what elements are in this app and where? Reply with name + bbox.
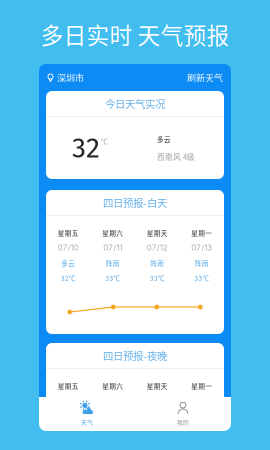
staticText: 天气 — [81, 418, 93, 426]
staticText: 星期天 — [147, 228, 168, 238]
button[interactable]: 我的 — [135, 397, 231, 431]
staticText: 我的 — [177, 418, 189, 426]
staticText: 深圳市 — [57, 71, 84, 84]
staticText: 33℃ — [150, 273, 165, 283]
staticText: 星期五 — [58, 381, 79, 391]
staticText: 星期一 — [191, 381, 212, 391]
button[interactable]: 深圳市 — [47, 67, 84, 88]
staticText: 33℃ — [194, 273, 209, 283]
staticText: 星期六 — [102, 381, 123, 391]
staticText: 07/12 — [147, 243, 168, 252]
staticText: 西南风 4级 — [157, 151, 195, 162]
staticText: 阵雨 — [150, 258, 164, 268]
staticText: 刷新天气 — [187, 71, 223, 84]
staticText: 07/10 — [58, 243, 79, 252]
staticText: 阵雨 — [106, 258, 120, 268]
staticText: 07/11 — [103, 243, 122, 252]
button[interactable]: 天气 — [39, 397, 135, 431]
staticText: 多云 — [157, 134, 171, 144]
staticText: 星期六 — [102, 228, 123, 238]
staticText: 多日实时 天气预报 — [40, 18, 229, 50]
staticText: 星期五 — [58, 228, 79, 238]
staticText: 星期天 — [147, 381, 168, 391]
staticText: 32℃ — [61, 273, 76, 283]
staticText: 32 — [72, 131, 100, 165]
staticText: 四日预报-白天 — [103, 195, 167, 210]
staticText: 多云 — [61, 258, 75, 268]
staticText: 33℃ — [105, 273, 120, 283]
staticText: 星期一 — [191, 228, 212, 238]
staticText: 四日预报-夜晚 — [103, 348, 167, 363]
staticText: 07/13 — [191, 243, 212, 252]
staticText: 今日天气实况 — [105, 96, 165, 111]
button[interactable]: 刷新天气 — [187, 67, 223, 88]
staticText: 阵雨 — [195, 258, 209, 268]
staticText: ℃ — [101, 136, 108, 146]
